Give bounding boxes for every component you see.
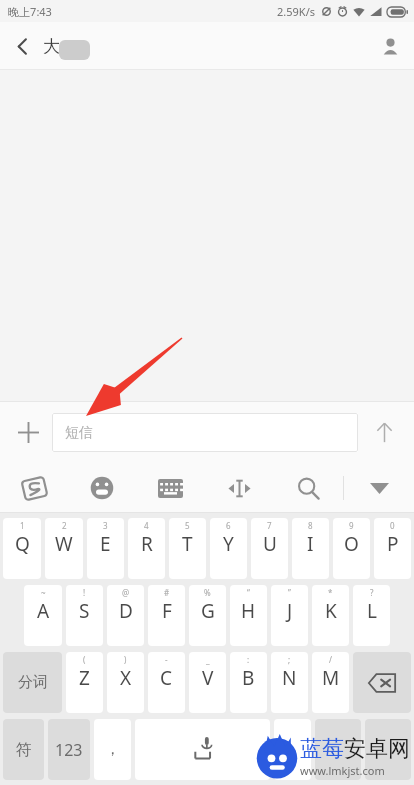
staticText: H [241,598,256,624]
button[interactable]: / [312,652,349,713]
button[interactable]: Delete [353,652,411,713]
staticText: “ [247,587,250,598]
button[interactable]: ， [94,719,131,780]
button[interactable]: 短信 [52,413,358,452]
button[interactable]: 分词 [3,652,62,713]
staticText: / [329,654,332,665]
button[interactable]: Keyboard layout [136,463,205,513]
button[interactable]: - [148,652,185,713]
staticText: J [287,598,293,624]
button[interactable]: : [230,652,267,713]
button[interactable]: 2 [45,518,83,579]
staticText: 5 [185,520,190,531]
staticText: ” [288,587,291,598]
staticText: ; [288,654,291,665]
button[interactable]: ! [66,585,103,646]
staticText: 6 [226,520,231,531]
staticText: 安卓网 [344,735,410,763]
staticText: www.lmkjst.com [300,763,385,778]
staticText: N [282,665,297,691]
staticText: 7 [267,520,272,531]
button[interactable]: Sogou input [0,463,68,513]
staticText: T [182,531,193,557]
button[interactable]: % [189,585,226,646]
staticText: : [247,654,250,665]
staticText: * [328,587,333,598]
button[interactable]: Emoji [68,463,136,513]
staticText: W [55,531,73,557]
staticText: ? [370,587,374,598]
button[interactable]: Contact info [366,22,414,70]
button[interactable]: 6 [210,518,247,579]
staticText: _ [206,654,210,665]
button[interactable]: # [148,585,185,646]
staticText: L [367,598,377,624]
button[interactable]: Hide keyboard [344,463,414,513]
button[interactable]: ) [107,652,144,713]
staticText: 8 [308,520,313,531]
staticText: B [242,665,255,691]
staticText: 4 [144,520,149,531]
staticText: I [307,531,314,557]
staticText: 。 [285,740,300,759]
button[interactable]: Emoji panel [315,719,361,780]
button[interactable]: * [312,585,349,646]
staticText: U [263,531,277,557]
staticText: 晚上7:43 [8,4,52,19]
staticText: V [202,665,214,691]
button[interactable]: 。 [274,719,311,780]
button[interactable]: ( [66,652,103,713]
button[interactable]: ; [271,652,308,713]
staticText: Z [79,665,90,691]
button[interactable]: Enter [365,719,411,780]
button[interactable]: Search [274,463,343,513]
staticText: Y [223,531,234,557]
staticText: ) [124,654,127,665]
staticText: ， [105,740,120,759]
button[interactable]: 5 [169,518,206,579]
button[interactable]: @ [107,585,144,646]
button[interactable]: 9 [333,518,370,579]
button[interactable]: Send [358,406,410,458]
staticText: 2.59K/s [277,4,315,19]
button[interactable]: Space [135,719,270,780]
button[interactable]: _ [189,652,226,713]
staticText: C [160,665,173,691]
button[interactable]: ? [353,585,390,646]
button[interactable]: Move cursor [205,463,274,513]
button[interactable]: 符 [3,719,44,780]
staticText: ! [83,587,86,598]
staticText: E [100,531,111,557]
button[interactable]: 8 [292,518,329,579]
staticText: ( [83,654,86,665]
staticText: K [325,598,337,624]
staticText: 分词 [18,673,48,692]
staticText: 2 [62,520,67,531]
staticText: Q [15,531,30,557]
button[interactable]: 4 [128,518,165,579]
staticText: G [201,598,215,624]
staticText: S [79,598,90,624]
staticText: 符 [16,740,32,760]
staticText: M [322,665,340,691]
staticText: O [344,531,359,557]
staticText: 1 [20,520,25,531]
button[interactable]: 7 [251,518,288,579]
button[interactable]: 123 [48,719,90,780]
staticText: 0 [390,520,395,531]
button[interactable]: ~ [24,585,62,646]
button[interactable]: Add attachment [4,408,52,456]
staticText: A [37,598,50,624]
staticText: 大 [43,36,60,57]
staticText: - [165,654,168,665]
staticText: # [164,587,170,598]
button[interactable]: 0 [374,518,411,579]
button[interactable]: ” [271,585,308,646]
button[interactable]: Back [0,22,44,70]
staticText: F [162,598,172,624]
staticText: 3 [103,520,108,531]
staticText: @ [122,587,130,598]
button[interactable]: “ [230,585,267,646]
button[interactable]: 3 [87,518,124,579]
button[interactable]: 1 [3,518,41,579]
